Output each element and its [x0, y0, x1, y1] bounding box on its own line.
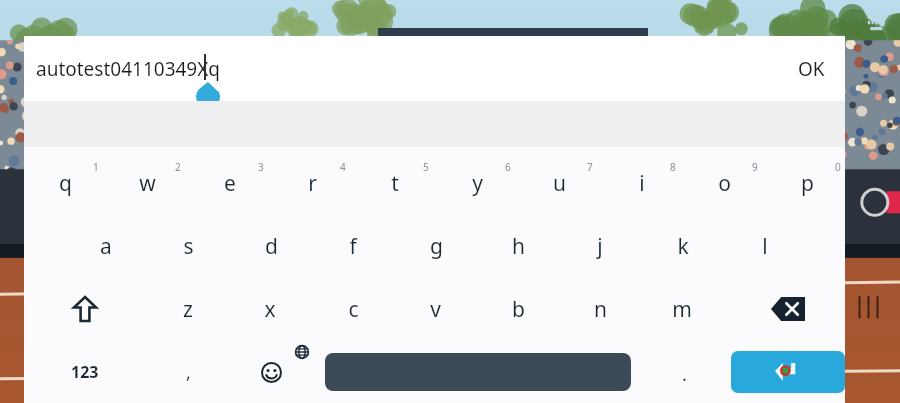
button[interactable]: g	[397, 217, 475, 275]
button[interactable]: ,	[153, 346, 223, 398]
staticText: b	[512, 295, 525, 324]
button[interactable]: w	[108, 154, 186, 212]
button[interactable]: r	[273, 154, 351, 212]
button[interactable]: d	[232, 217, 310, 275]
button[interactable]: m	[643, 280, 721, 338]
staticText: p	[801, 169, 814, 198]
staticText: n	[594, 295, 607, 324]
staticText: a	[100, 232, 112, 261]
staticText: z	[183, 295, 193, 324]
other: Text cursor handle	[195, 82, 221, 110]
button[interactable]: Space	[325, 353, 631, 391]
staticText: u	[553, 169, 566, 198]
staticText: autotest04110349Xq	[36, 56, 221, 82]
button[interactable]: l	[726, 217, 804, 275]
staticText: .	[682, 362, 687, 387]
button[interactable]: f	[314, 217, 392, 275]
button[interactable]: t	[356, 154, 434, 212]
other: Keyboard indicator	[866, 14, 888, 32]
button[interactable]: z	[149, 280, 227, 338]
staticText: h	[512, 232, 525, 261]
button[interactable]: h	[479, 217, 557, 275]
button[interactable]: y	[438, 154, 516, 212]
button[interactable]: .	[654, 350, 714, 398]
button[interactable]: Shift	[48, 282, 122, 336]
button[interactable]: k	[644, 217, 722, 275]
staticText: g	[430, 232, 443, 261]
button[interactable]: o	[685, 154, 763, 212]
button[interactable]: Enter	[731, 351, 845, 393]
staticText: OK	[798, 56, 825, 82]
staticText: 2	[175, 160, 181, 174]
staticText: r	[308, 169, 317, 198]
staticText: l	[762, 232, 768, 261]
button[interactable]: i	[603, 154, 681, 212]
staticText: v	[430, 295, 441, 324]
staticText: q	[59, 169, 72, 198]
button[interactable]: Change language	[288, 338, 316, 366]
staticText: 8	[670, 160, 676, 174]
button[interactable]: OK	[798, 56, 825, 82]
staticText: 123	[71, 361, 99, 383]
staticText: 6	[505, 160, 511, 174]
staticText: y	[472, 169, 483, 198]
button[interactable]: b	[479, 280, 557, 338]
staticText: e	[224, 169, 236, 198]
button[interactable]: e	[191, 154, 269, 212]
staticText: d	[265, 232, 278, 261]
button[interactable]: 123	[48, 345, 122, 399]
button[interactable]: x	[231, 280, 309, 338]
staticText: o	[718, 169, 731, 198]
button[interactable]: v	[396, 280, 474, 338]
button[interactable]: j	[561, 217, 639, 275]
staticText: ,	[186, 360, 191, 385]
staticText: m	[672, 295, 692, 324]
staticText: s	[183, 232, 194, 261]
staticText: x	[264, 295, 276, 324]
staticText: 4	[340, 160, 346, 174]
button[interactable]: autotest04110349Xq	[24, 36, 845, 101]
button[interactable]: n	[561, 280, 639, 338]
staticText: j	[597, 232, 603, 261]
staticText: 5	[423, 160, 429, 174]
staticText: k	[677, 232, 689, 261]
staticText: f	[349, 232, 357, 261]
staticText: 1	[93, 160, 99, 174]
staticText: w	[139, 169, 156, 198]
staticText: i	[639, 169, 645, 198]
staticText: 9	[752, 160, 758, 174]
button[interactable]: u	[520, 154, 598, 212]
button[interactable]: a	[67, 217, 145, 275]
staticText: 0	[835, 160, 841, 174]
button[interactable]: Backspace	[751, 282, 825, 336]
button[interactable]: p	[768, 154, 846, 212]
staticText: 3	[258, 160, 264, 174]
staticText: 7	[587, 160, 593, 174]
staticText: t	[391, 169, 399, 198]
button[interactable]: q	[26, 154, 104, 212]
button[interactable]: c	[314, 280, 392, 338]
button[interactable]: s	[149, 217, 227, 275]
button[interactable]: Emoji	[243, 348, 299, 396]
staticText: c	[348, 295, 359, 324]
